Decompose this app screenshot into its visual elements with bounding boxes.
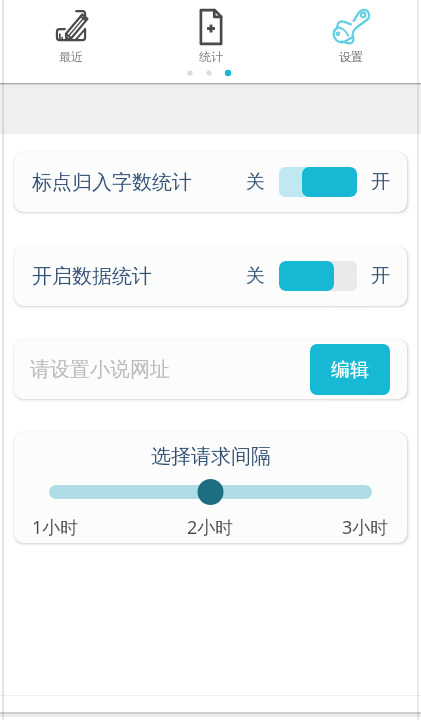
staticText: 开 [371, 170, 390, 194]
staticText: 编辑 [331, 358, 369, 382]
button[interactable]: 标点归入字数统计 [14, 152, 407, 212]
staticText: 开启数据统计 [32, 264, 152, 289]
staticText: 关 [246, 170, 265, 194]
staticText: 统计 [199, 49, 223, 64]
staticText: 1小时 [32, 515, 79, 540]
staticText: 3小时 [342, 515, 389, 540]
staticText: 设置 [339, 49, 363, 64]
staticText: 关 [246, 264, 265, 288]
staticText: 开 [371, 264, 390, 288]
button[interactable]: 统计 [141, 0, 281, 64]
staticText: 请设置小说网址 [30, 357, 170, 382]
staticText: 标点归入字数统计 [32, 170, 192, 195]
staticText: 2小时 [187, 515, 234, 540]
staticText: 最近 [59, 49, 83, 64]
button[interactable]: 开关，已关闭 [279, 261, 357, 291]
staticText: 选择请求间隔 [151, 444, 271, 469]
button[interactable]: 编辑 [310, 344, 390, 395]
button[interactable]: 最近 [0, 0, 141, 64]
button[interactable]: 请求间隔滑块，当前 2 小时 [32, 478, 389, 506]
button[interactable]: 开关，已开启 [279, 167, 357, 197]
button[interactable]: 开启数据统计 [14, 246, 407, 306]
button[interactable]: 设置 [281, 0, 421, 64]
